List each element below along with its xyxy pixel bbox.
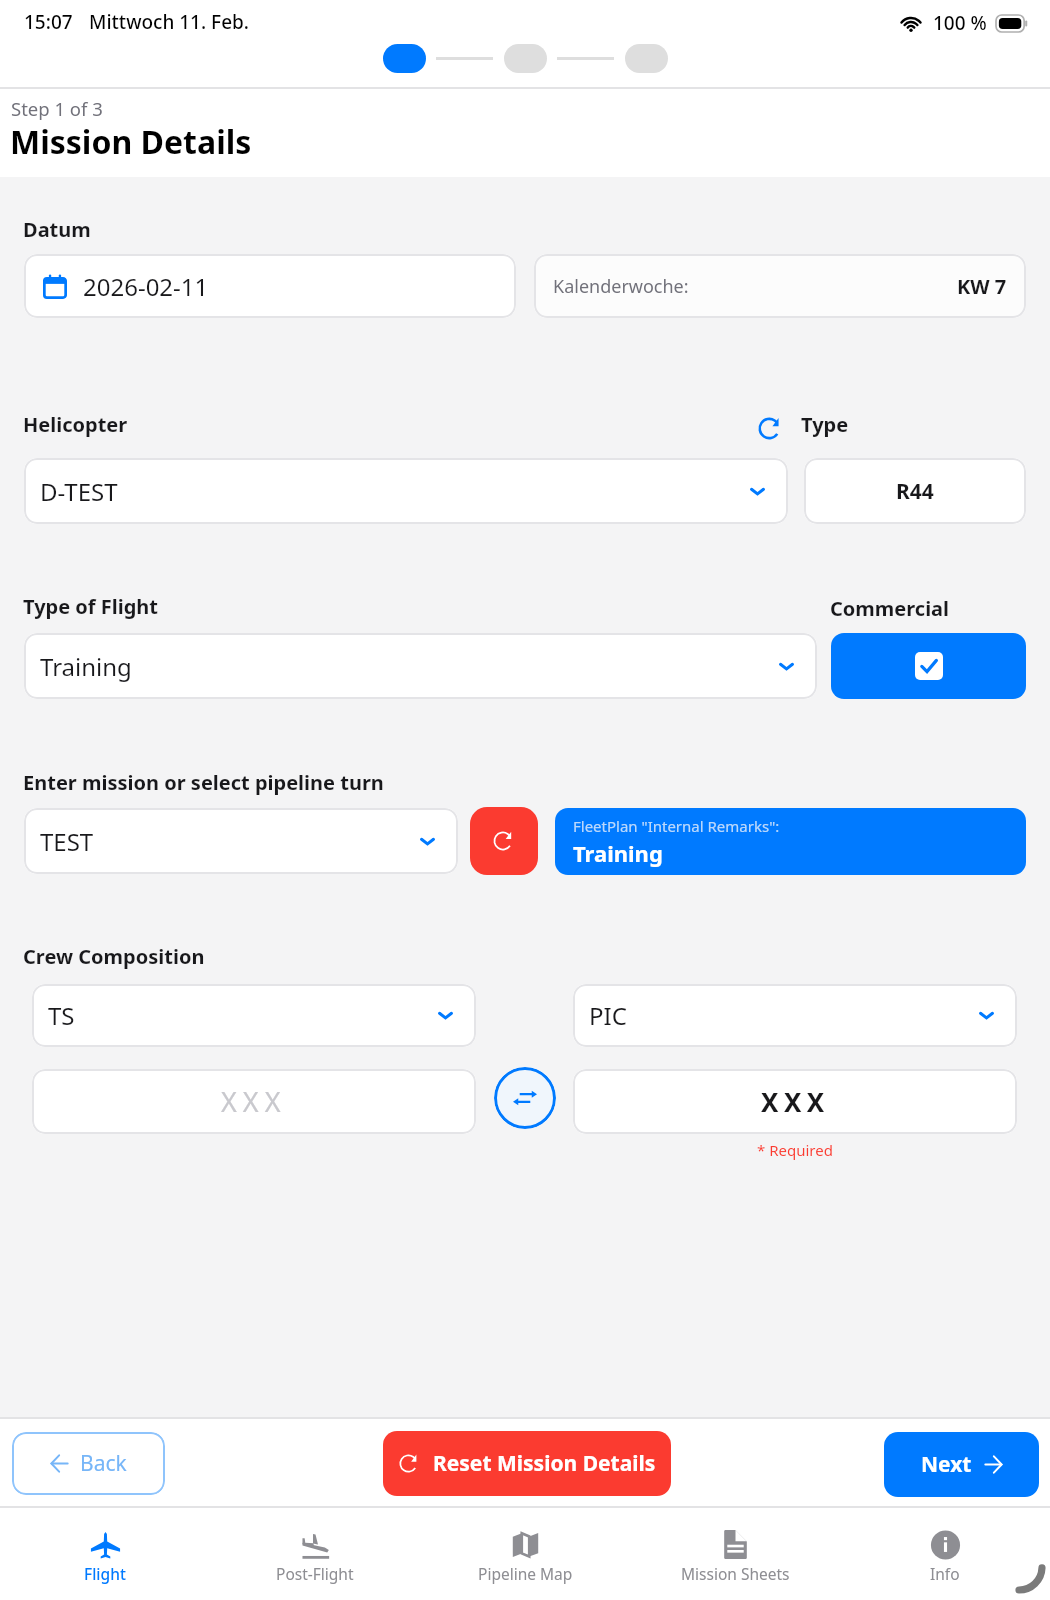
button[interactable]: 2026-02-11 [24,254,516,318]
button[interactable]: R44 [804,458,1026,524]
button[interactable]: FleetPlan "Internal Remarks": [555,808,1026,875]
staticText: XXX [761,1084,830,1119]
button[interactable] [383,44,426,73]
staticText: Post-Flight [276,1563,354,1584]
button[interactable]: Pipeline Map [420,1529,630,1595]
staticText: Commercial [830,595,950,622]
button[interactable]: Flight [0,1529,210,1595]
staticText: Step 1 of 3 [11,96,103,121]
staticText: Kalenderwoche: [553,274,689,299]
button[interactable]: TEST [24,808,458,874]
staticText: D-TEST [40,475,118,508]
button[interactable]: Info [840,1529,1050,1595]
button[interactable] [831,633,1026,699]
staticText: Mission Sheets [681,1563,790,1584]
button[interactable]: TS [32,984,476,1047]
staticText: Enter mission or select pipeline turn [23,769,384,796]
staticText: Training [40,650,132,683]
staticText: 100 % [933,10,987,36]
staticText: Mittwoch 11. Feb. [89,9,249,35]
button[interactable]: Mission Sheets [630,1529,840,1595]
staticText: 2026-02-11 [83,270,209,303]
staticText: Crew Composition [23,943,205,970]
staticText: Info [930,1563,960,1584]
staticText: TS [48,999,75,1032]
staticText: Flight [84,1563,126,1584]
staticText: Reset Mission Details [433,1449,656,1478]
button[interactable] [504,44,547,73]
button[interactable]: D-TEST [24,458,788,524]
staticText: XXX [221,1083,287,1120]
button[interactable]: Reset Mission Details [383,1431,671,1496]
button[interactable]: Kalenderwoche: [534,254,1026,318]
staticText: Next [921,1450,972,1479]
staticText: TEST [40,825,94,858]
staticText: 15:07 [24,9,73,35]
staticText: R44 [896,477,934,506]
button[interactable]: Reset mission field [470,807,538,875]
button[interactable]: Refresh helicopter list [752,410,788,446]
staticText: PIC [589,999,627,1032]
button[interactable]: PIC [573,984,1017,1047]
staticText: Datum [23,216,91,243]
staticText: * Required [757,1140,833,1160]
button[interactable]: Next [884,1432,1039,1497]
staticText: Mission Details [10,120,252,164]
staticText: Type [801,411,849,438]
staticText: Type of Flight [23,593,159,620]
button[interactable] [625,44,668,73]
staticText: Training [573,838,663,868]
button[interactable]: Swap crew members [494,1067,556,1129]
staticText: Helicopter [23,411,128,438]
button[interactable]: Post-Flight [210,1529,420,1595]
staticText: FleetPlan "Internal Remarks": [573,816,780,836]
staticText: Back [80,1449,127,1478]
staticText: Pipeline Map [478,1563,573,1584]
staticText: KW 7 [957,273,1007,300]
button[interactable]: Training [24,633,817,699]
button[interactable]: XXX [32,1069,476,1134]
button[interactable]: Back [12,1432,165,1495]
button[interactable]: XXX [573,1069,1017,1134]
